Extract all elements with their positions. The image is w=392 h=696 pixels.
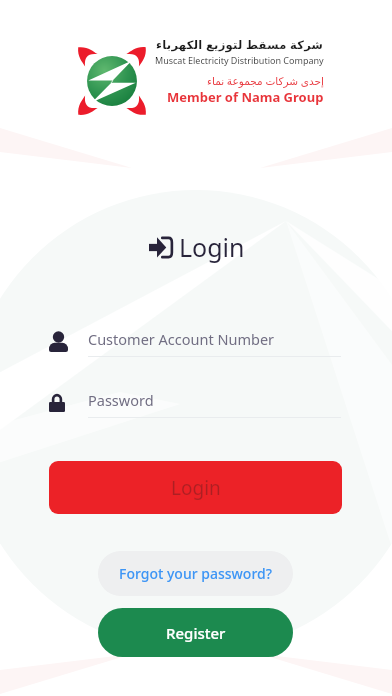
staticText: شركة مسقط لتوزيع الكهرباء — [156, 37, 324, 53]
staticText: Login — [171, 475, 221, 501]
staticText: Member of Nama Group — [167, 88, 324, 106]
staticText: Customer Account Number — [88, 329, 275, 349]
button[interactable]: Login — [49, 461, 342, 514]
button[interactable]: Register — [98, 608, 293, 657]
staticText: Login — [179, 230, 245, 264]
button[interactable]: Forgot your password? — [98, 551, 293, 596]
staticText: إحدى شركات مجموعة نماء — [207, 74, 324, 88]
other: Login — [148, 235, 173, 260]
staticText: Password — [88, 390, 154, 410]
staticText: Forgot your password? — [119, 564, 272, 583]
staticText: Muscat Electricity Distribution Company — [155, 54, 324, 66]
staticText: Register — [166, 623, 226, 643]
